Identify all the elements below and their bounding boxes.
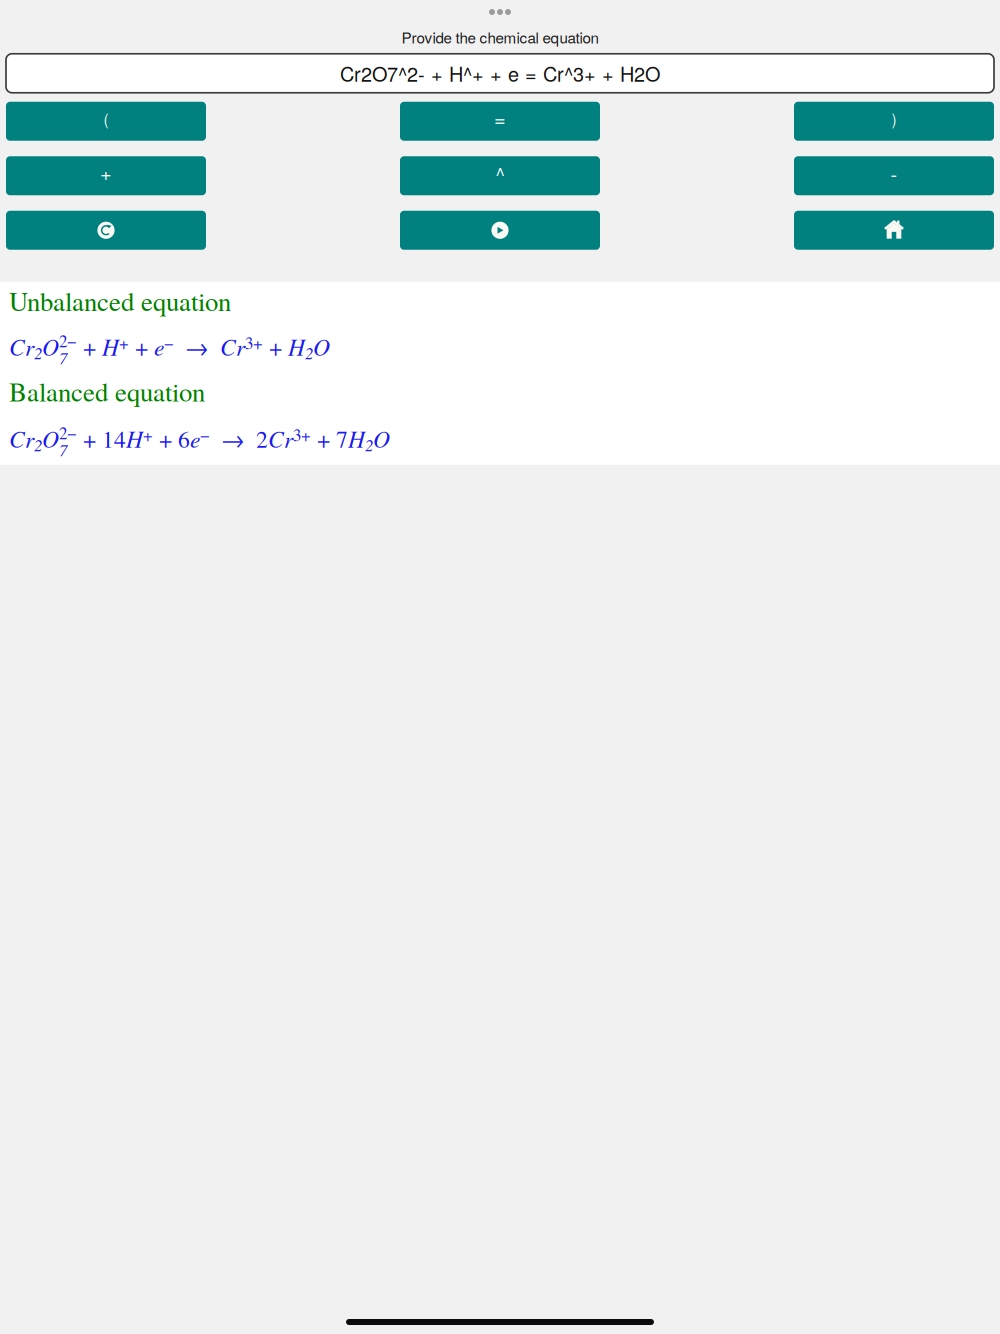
button[interactable]: ( xyxy=(6,102,206,141)
staticText: ( xyxy=(103,108,108,130)
button[interactable]: Balance equation xyxy=(400,211,600,250)
staticText: + 14H+ + 6e− → 2Cr3+ + 7H2O xyxy=(77,423,390,455)
button[interactable]: ) xyxy=(794,102,994,141)
staticText: Balanced equation xyxy=(9,373,205,409)
staticText: Cr2O7^2- + H^+ + e = Cr^3+ + H2O xyxy=(340,59,660,87)
staticText: Cr2O xyxy=(9,423,59,455)
staticText: 7 xyxy=(59,346,67,369)
button[interactable]: ^ xyxy=(400,156,600,195)
staticText: ^ xyxy=(495,159,504,187)
button[interactable]: = xyxy=(400,102,600,141)
staticText: Unbalanced equation xyxy=(9,283,231,319)
staticText: 2− xyxy=(59,329,77,352)
staticText: - xyxy=(890,159,897,187)
staticText: 7 xyxy=(59,438,67,461)
staticText: + xyxy=(100,158,112,186)
staticText: Cr2O xyxy=(9,331,59,363)
button[interactable]: + xyxy=(6,156,206,195)
staticText: ) xyxy=(891,108,896,130)
staticText: = xyxy=(494,103,506,132)
button[interactable]: Home xyxy=(794,211,994,250)
button[interactable]: - xyxy=(794,156,994,195)
button[interactable]: Clear xyxy=(6,211,206,250)
staticText: + H+ + e− → Cr3+ + H2O xyxy=(77,331,330,363)
staticText: Provide the chemical equation xyxy=(401,26,598,48)
staticText: 2− xyxy=(59,421,77,444)
